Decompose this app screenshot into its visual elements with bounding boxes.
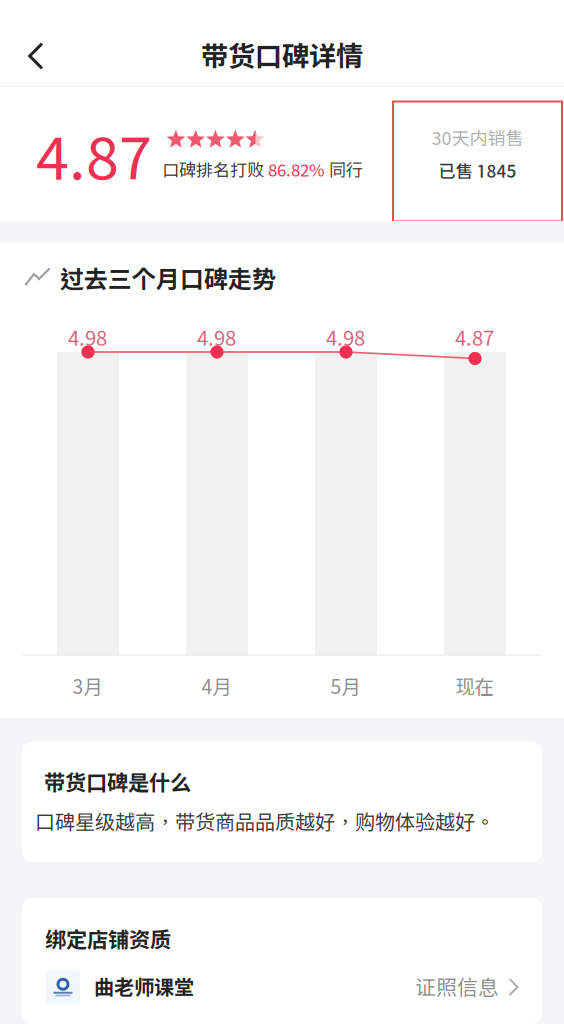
button[interactable]: Back xyxy=(4,34,68,78)
staticText: 4.98 xyxy=(197,326,236,350)
staticText: 4.87 xyxy=(455,326,494,350)
staticText: 4.98 xyxy=(326,326,365,350)
staticText: 现在 xyxy=(455,675,493,698)
button[interactable]: 曲老师课堂 xyxy=(22,961,542,1013)
staticText: 4.87 xyxy=(36,121,152,192)
staticText: 4月 xyxy=(201,675,231,698)
staticText: 带货口碑是什么 xyxy=(44,770,191,795)
staticText: 口碑排名打败 xyxy=(162,160,268,180)
staticText: 曲老师课堂 xyxy=(94,975,194,999)
staticText: 86.82% xyxy=(268,160,325,180)
staticText: 绑定店铺资质 xyxy=(45,927,171,952)
staticText: 30天内销售 xyxy=(431,127,523,149)
staticText: 5月 xyxy=(330,675,360,698)
staticText: 3月 xyxy=(72,675,102,698)
staticText: 带货口碑详情 xyxy=(201,40,363,72)
staticText: 过去三个月口碑走势 xyxy=(60,265,276,293)
staticText: 4.98 xyxy=(68,326,107,350)
staticText: 证照信息 xyxy=(415,975,499,999)
staticText: 同行 xyxy=(325,160,363,180)
staticText: 已售 1845 xyxy=(438,161,516,181)
staticText: 口碑星级越高，带货商品品质越好，购物体验越好。 xyxy=(35,810,495,834)
